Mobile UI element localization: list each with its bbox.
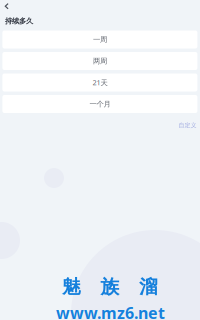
staticText: 一个月: [89, 99, 110, 109]
staticText: 21天: [92, 77, 107, 87]
staticText: 持续多久: [5, 16, 33, 26]
button[interactable]: Back: [0, 0, 18, 14]
staticText: 一周: [93, 35, 107, 44]
staticText: www.mz6.net: [56, 302, 165, 320]
button[interactable]: 一个月: [2, 95, 197, 113]
button[interactable]: 21天: [2, 73, 197, 91]
staticText: 魅: [62, 275, 81, 298]
staticText: 两周: [93, 56, 107, 66]
button[interactable]: 一周: [2, 30, 197, 48]
staticText: 族: [100, 275, 119, 298]
button[interactable]: 两周: [2, 52, 197, 70]
staticText: 自定义: [178, 121, 196, 129]
button[interactable]: 自定义: [176, 119, 198, 131]
staticText: 溜: [139, 275, 158, 298]
